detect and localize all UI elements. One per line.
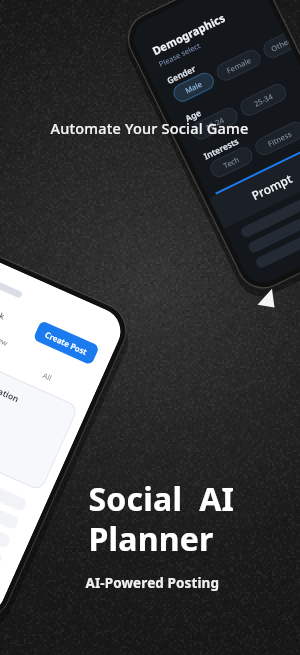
- button[interactable]: Social AI Planner promo: [0, 0, 300, 655]
